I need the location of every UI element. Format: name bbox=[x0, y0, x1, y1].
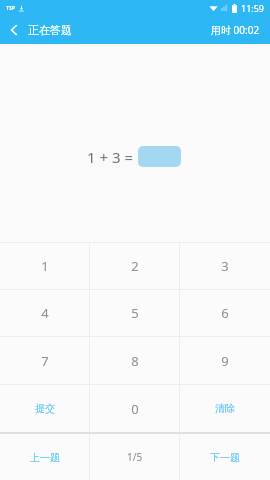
staticText: 4 bbox=[41, 304, 49, 322]
staticText: 5 bbox=[131, 304, 139, 322]
staticText: TSP bbox=[6, 5, 15, 12]
button[interactable]: Back bbox=[0, 16, 28, 44]
staticText: 11:59 bbox=[241, 2, 265, 14]
button[interactable]: 7 bbox=[0, 337, 90, 384]
staticText: 正在答题 bbox=[28, 23, 72, 37]
staticText: 提交 bbox=[35, 402, 55, 415]
staticText: 上一题 bbox=[30, 451, 60, 464]
button[interactable]: 2 bbox=[90, 243, 180, 289]
staticText: 下一题 bbox=[210, 451, 240, 464]
staticText: 6 bbox=[221, 304, 229, 322]
button[interactable]: 9 bbox=[180, 337, 270, 384]
staticText: 用时 00:02 bbox=[211, 23, 260, 37]
button[interactable]: 4 bbox=[0, 290, 90, 336]
button[interactable]: 1 bbox=[0, 243, 90, 289]
button[interactable]: 下一题 bbox=[180, 434, 270, 480]
staticText: 清除 bbox=[215, 402, 235, 415]
button[interactable]: 6 bbox=[180, 290, 270, 336]
button[interactable]: 1/5 bbox=[90, 434, 180, 480]
button[interactable]: 清除 bbox=[180, 385, 270, 432]
staticText: 1/5 bbox=[127, 450, 143, 464]
button[interactable]: 上一题 bbox=[0, 434, 90, 480]
staticText: 3 bbox=[221, 257, 229, 275]
staticText: 9 bbox=[221, 352, 229, 370]
button[interactable]: 提交 bbox=[0, 385, 90, 432]
button[interactable]: 5 bbox=[90, 290, 180, 336]
button[interactable]: 8 bbox=[90, 337, 180, 384]
button[interactable]: Answer input bbox=[138, 146, 181, 167]
button[interactable]: 0 bbox=[90, 385, 180, 432]
staticText: 8 bbox=[131, 352, 139, 370]
staticText: 0 bbox=[131, 400, 139, 418]
staticText: 1 bbox=[41, 257, 49, 275]
staticText: 2 bbox=[131, 257, 139, 275]
button[interactable]: 3 bbox=[180, 243, 270, 289]
staticText: 7 bbox=[41, 352, 49, 370]
staticText: 1 + 3 = bbox=[87, 147, 134, 167]
